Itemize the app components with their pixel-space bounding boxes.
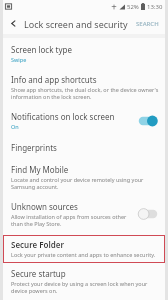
staticText: Info and app shortcuts — [11, 74, 97, 85]
button[interactable]: Switch on — [137, 114, 159, 128]
button[interactable]: Fingerprints — [3, 137, 165, 162]
button[interactable]: Notifications on lock screen — [3, 107, 165, 137]
button[interactable]: Switch off — [137, 207, 159, 221]
button[interactable]: Secure startup — [3, 263, 165, 298]
staticText: Show app shortcuts, the dual clock, or t… — [11, 86, 159, 100]
staticText: Lock screen and security — [24, 18, 128, 30]
staticText: Allow installation of apps from sources … — [11, 213, 133, 227]
staticText: 13:30 — [147, 3, 163, 11]
staticText: Unknown sources — [11, 201, 78, 212]
staticText: Secure Folder — [11, 239, 64, 250]
staticText: Notifications on lock screen — [11, 111, 115, 122]
staticText: Fingerprints — [11, 142, 57, 153]
staticText: Locate and control your device remotely … — [11, 176, 159, 190]
staticText: Lock your private content and apps to en… — [11, 251, 156, 258]
button[interactable]: Secure Folder — [3, 235, 165, 263]
button[interactable]: Unknown sources — [3, 197, 165, 235]
staticText: Swipe — [11, 56, 27, 63]
button[interactable]: Find My Mobile — [3, 162, 165, 197]
button[interactable]: Navigate up — [6, 16, 21, 31]
staticText: Find My Mobile — [11, 164, 69, 175]
staticText: On — [11, 123, 19, 130]
staticText: Protect your device by using a screen lo… — [11, 280, 159, 294]
staticText: Screen lock type — [11, 44, 72, 55]
button[interactable]: Screen lock type — [3, 38, 165, 70]
staticText: SEARCH — [136, 20, 159, 28]
staticText: Secure startup — [11, 268, 66, 279]
button[interactable]: Info and app shortcuts — [3, 70, 165, 107]
staticText: 52% — [127, 3, 139, 11]
button[interactable]: SEARCH — [134, 16, 161, 32]
